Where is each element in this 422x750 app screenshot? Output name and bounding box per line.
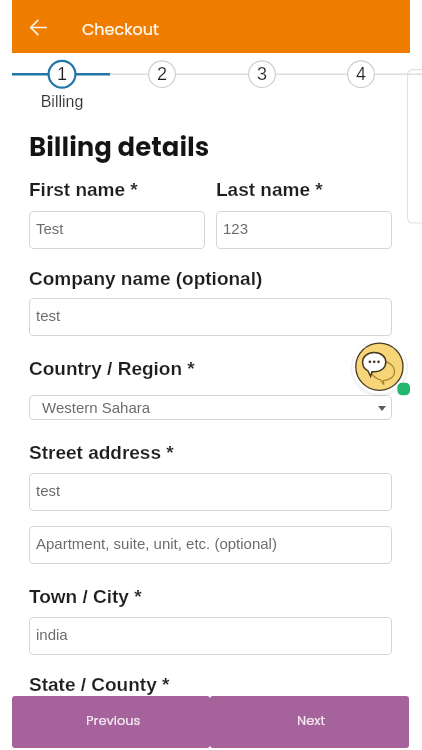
- staticText: Test: [36, 220, 64, 237]
- button[interactable]: Back: [16, 5, 60, 49]
- staticText: First name *: [29, 179, 138, 200]
- staticText: 123: [223, 220, 249, 237]
- staticText: Town / City *: [29, 586, 142, 607]
- button[interactable]: 1: [48, 60, 76, 88]
- staticText: test: [36, 482, 61, 499]
- button[interactable]: 4: [347, 60, 375, 88]
- staticText: 4: [356, 64, 367, 84]
- staticText: india: [36, 626, 68, 643]
- button[interactable]: 2: [148, 60, 176, 88]
- staticText: Company name (optional): [29, 268, 263, 289]
- button[interactable]: Next: [210, 696, 409, 748]
- staticText: Previous: [86, 711, 141, 729]
- staticText: 3: [257, 64, 268, 84]
- button[interactable]: Chat: [350, 337, 416, 403]
- staticText: Western Sahara: [42, 399, 151, 416]
- staticText: Billing: [32, 93, 92, 111]
- staticText: State / County *: [29, 674, 170, 695]
- button[interactable]: Test: [29, 211, 205, 249]
- button[interactable]: test: [29, 473, 392, 511]
- button[interactable]: Previous: [12, 696, 210, 748]
- button[interactable]: Apartment, suite, unit, etc. (optional): [29, 526, 392, 564]
- button[interactable]: 3: [248, 60, 276, 88]
- staticText: 2: [157, 64, 168, 84]
- button[interactable]: Western Sahara: [29, 395, 392, 420]
- staticText: Street address *: [29, 442, 174, 463]
- button[interactable]: 123: [216, 211, 392, 249]
- staticText: Country / Region *: [29, 358, 195, 379]
- staticText: Apartment, suite, unit, etc. (optional): [36, 535, 277, 552]
- staticText: Checkout: [82, 18, 159, 40]
- staticText: Next: [297, 711, 326, 729]
- staticText: 1: [57, 64, 68, 84]
- staticText: Last name *: [216, 179, 323, 200]
- staticText: Billing details: [29, 129, 210, 165]
- staticText: test: [36, 307, 61, 324]
- button[interactable]: test: [29, 298, 392, 336]
- button[interactable]: india: [29, 617, 392, 655]
